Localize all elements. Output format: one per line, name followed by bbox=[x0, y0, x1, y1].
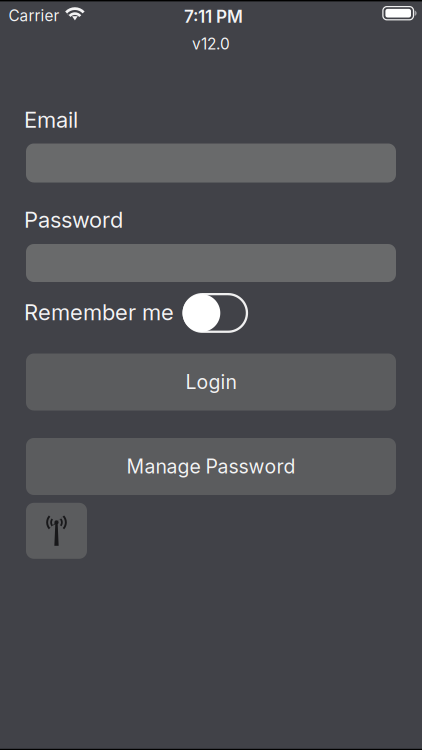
button[interactable]: Remember me bbox=[182, 293, 248, 333]
button[interactable]: Manage Password bbox=[26, 438, 396, 495]
staticText: Password bbox=[24, 206, 123, 233]
staticText: Manage Password bbox=[126, 455, 295, 478]
staticText: Remember me bbox=[24, 299, 174, 326]
staticText: Login bbox=[185, 370, 236, 394]
button[interactable]: Login bbox=[26, 353, 396, 410]
staticText: Email bbox=[24, 106, 78, 133]
button[interactable]: Broadcast settings bbox=[26, 503, 87, 559]
staticText: v12.0 bbox=[192, 34, 230, 53]
staticText: Carrier bbox=[8, 6, 59, 25]
staticText: 7:11 PM bbox=[184, 6, 243, 27]
